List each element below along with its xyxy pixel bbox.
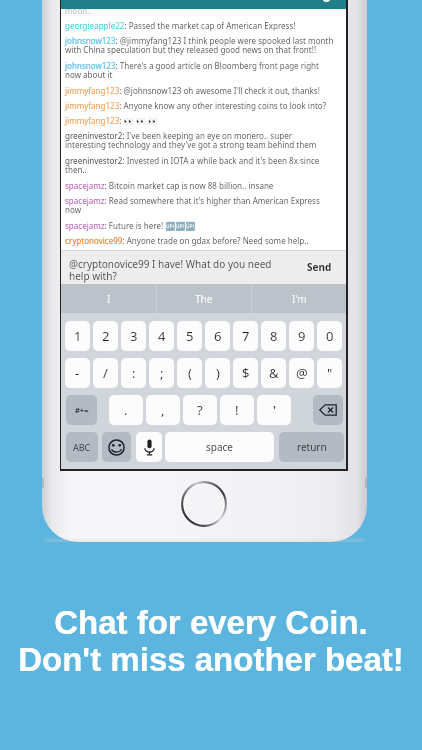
button[interactable]: @ <box>289 358 314 388</box>
staticText: 9 <box>298 327 306 345</box>
staticText: - <box>75 364 80 382</box>
staticText: #+= <box>75 405 89 415</box>
staticText: , <box>161 401 165 419</box>
staticText: ) <box>216 364 220 382</box>
button[interactable]: ( <box>177 358 202 388</box>
button[interactable]: 1 <box>65 321 90 351</box>
button[interactable]: Backspace <box>313 395 343 425</box>
staticText: & <box>269 364 279 382</box>
button[interactable]: 2 <box>93 321 118 351</box>
button[interactable]: 0 <box>317 321 342 351</box>
button[interactable]: I <box>61 284 156 313</box>
staticText: / <box>103 364 108 382</box>
staticText: jimmyfang123: 👀 👀 👀 <box>65 115 158 126</box>
staticText: ? <box>197 401 203 419</box>
staticText: spacejamz: Read somewhere that it's high… <box>65 195 334 216</box>
button[interactable]: 3 <box>121 321 146 351</box>
staticText: I <box>107 292 111 306</box>
staticText: ABC <box>73 441 91 453</box>
button[interactable]: 7 <box>233 321 258 351</box>
button[interactable]: - <box>65 358 90 388</box>
staticText: ! <box>235 401 239 419</box>
button[interactable]: 9 <box>289 321 314 351</box>
button[interactable]: . <box>109 395 143 425</box>
staticText: moon.. <box>65 5 92 16</box>
staticText: georgieapple22: Passed the market cap of… <box>65 20 296 31</box>
staticText: : <box>132 364 136 382</box>
button[interactable]: The <box>157 284 251 313</box>
button[interactable]: 8 <box>261 321 286 351</box>
button[interactable]: Dictate <box>136 432 162 462</box>
button[interactable]: & <box>261 358 286 388</box>
button[interactable]: 6 <box>205 321 230 351</box>
button[interactable]: Send <box>297 258 341 276</box>
staticText: ' <box>273 401 276 419</box>
staticText: return <box>297 440 327 454</box>
button[interactable]: $ <box>233 358 258 388</box>
button[interactable]: space <box>165 432 274 462</box>
staticText: Send <box>307 260 332 274</box>
staticText: spacejamz: Bitcoin market cap is now 88 … <box>65 180 274 191</box>
other: Profile <box>320 0 333 2</box>
staticText: jimmyfang123: @johnsnow123 oh awesome I'… <box>65 85 320 96</box>
button[interactable]: : <box>121 358 146 388</box>
staticText: 8 <box>270 327 278 345</box>
staticText: 4 <box>158 327 166 345</box>
button[interactable]: ) <box>205 358 230 388</box>
staticText: 6 <box>214 327 222 345</box>
button[interactable]: ! <box>220 395 254 425</box>
staticText: space <box>206 440 233 454</box>
staticText: greeninvestor2: I've been keeping an eye… <box>65 130 334 151</box>
staticText: Chat for every Coin. <box>54 604 368 641</box>
staticText: greeninvestor2: Invested in IOTA a while… <box>65 155 334 176</box>
staticText: Don't miss another beat! <box>18 641 404 678</box>
button[interactable]: Profile <box>61 0 346 9</box>
button[interactable]: ; <box>149 358 174 388</box>
staticText: 0 <box>326 327 334 345</box>
button[interactable]: 4 <box>149 321 174 351</box>
staticText: johnsnow123: There's a good article on B… <box>65 60 334 81</box>
button[interactable]: ABC <box>66 432 98 462</box>
staticText: 5 <box>186 327 194 345</box>
staticText: @ <box>296 364 308 382</box>
button[interactable]: return <box>279 432 344 462</box>
button[interactable]: 5 <box>177 321 202 351</box>
staticText: I'm <box>292 292 307 306</box>
button[interactable]: #+= <box>66 395 97 425</box>
staticText: . <box>124 401 128 419</box>
staticText: The <box>195 292 213 306</box>
button[interactable]: @cryptonovice99 I have! What do you need… <box>61 250 346 284</box>
staticText: $ <box>242 364 250 382</box>
staticText: jimmyfang123: Anyone know any other inte… <box>65 100 327 111</box>
staticText: " <box>327 364 333 382</box>
button[interactable]: / <box>93 358 118 388</box>
staticText: johnsnow123: @jimmyfang123 I think peopl… <box>65 35 334 56</box>
staticText: @cryptonovice99 I have! What do you need… <box>69 257 285 283</box>
button[interactable]: I'm <box>252 284 346 313</box>
button[interactable]: ' <box>257 395 291 425</box>
staticText: 2 <box>102 327 110 345</box>
staticText: cryptonovice99: Anyone trade on gdax bef… <box>65 235 309 246</box>
staticText: ; <box>160 364 164 382</box>
staticText: ( <box>188 364 192 382</box>
staticText: spacejamz: Future is here! 🆙🆙🆙 <box>65 220 196 231</box>
staticText: 7 <box>242 327 250 345</box>
button[interactable]: ? <box>183 395 217 425</box>
button[interactable]: " <box>317 358 342 388</box>
button[interactable]: Home <box>181 481 227 527</box>
staticText: 1 <box>74 327 82 345</box>
staticText: 3 <box>130 327 138 345</box>
button[interactable]: , <box>146 395 180 425</box>
button[interactable]: Emoji keyboard <box>102 432 131 462</box>
